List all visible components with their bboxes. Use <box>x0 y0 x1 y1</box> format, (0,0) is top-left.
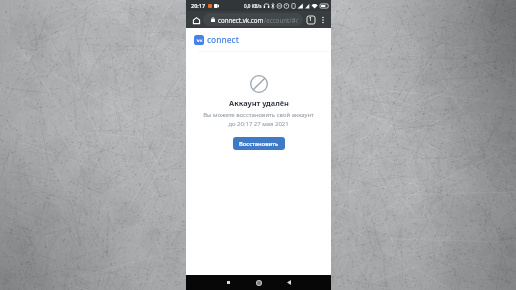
button[interactable]: Back <box>282 276 295 289</box>
button[interactable]: Home <box>252 276 265 289</box>
button[interactable]: Восстановить <box>233 137 285 150</box>
button[interactable]: Recents <box>222 276 235 289</box>
staticText: 20:17 <box>191 2 206 9</box>
button[interactable]: Tabs <box>305 14 316 25</box>
staticText: Вы можете восстановить свой аккаунт до 2… <box>203 111 314 127</box>
staticText: connect.vk.com <box>218 16 264 24</box>
staticText: Аккаунт удалён <box>229 98 289 108</box>
button[interactable]: connect.vk.com <box>203 13 303 26</box>
button[interactable]: Home <box>190 14 202 26</box>
staticText: Восстановить <box>239 140 279 148</box>
button[interactable]: VK <box>194 35 204 45</box>
staticText: 1 <box>309 16 312 23</box>
button[interactable]: More options <box>317 14 328 25</box>
staticText: connect <box>207 34 239 45</box>
staticText: 0,0 KB/s <box>244 3 262 9</box>
staticText: /account/#/ <box>264 16 298 24</box>
